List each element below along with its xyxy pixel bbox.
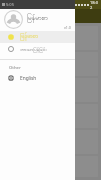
- button[interactable]: Account avatar: [0, 9, 75, 31]
- button[interactable]: ဘာသာပြန်ခြင်း: [0, 43, 75, 55]
- staticText: English: [20, 75, 37, 82]
- staticText: မြန်မာစာ: [27, 14, 48, 24]
- button[interactable]: မြန်မာစာ: [0, 31, 75, 43]
- staticText: ဘာသာပြန်ခြင်း: [20, 46, 47, 53]
- staticText: မြန်မာစာ: [20, 32, 39, 42]
- staticText: v1.0: [64, 25, 71, 30]
- staticText: 5:05: [6, 2, 14, 7]
- staticText: 18:02: [90, 0, 99, 9]
- other: Account avatar: [4, 10, 23, 29]
- button[interactable]: English: [0, 72, 75, 84]
- staticText: Other: [9, 65, 21, 71]
